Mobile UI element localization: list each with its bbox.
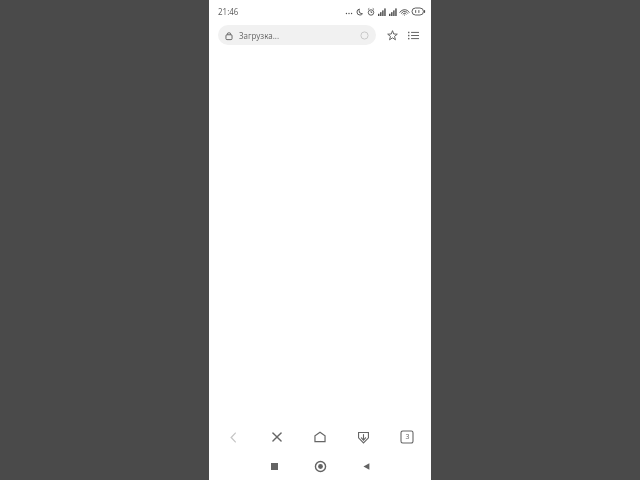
- button[interactable]: Загрузка...: [218, 25, 376, 45]
- button[interactable]: Back: [343, 452, 389, 480]
- button[interactable]: Bookmark: [383, 26, 401, 44]
- button[interactable]: Recents: [251, 452, 297, 480]
- button[interactable]: Stop loading: [258, 422, 296, 452]
- button[interactable]: Downloads: [344, 422, 382, 452]
- staticText: 3: [405, 432, 410, 442]
- staticText: Загрузка...: [239, 30, 360, 41]
- button[interactable]: Menu: [404, 26, 422, 44]
- staticText: 21:46: [218, 6, 239, 17]
- button[interactable]: Home: [297, 452, 343, 480]
- button[interactable]: Home: [301, 422, 339, 452]
- button[interactable]: Tabs: [388, 422, 426, 452]
- button[interactable]: Back: [214, 422, 252, 452]
